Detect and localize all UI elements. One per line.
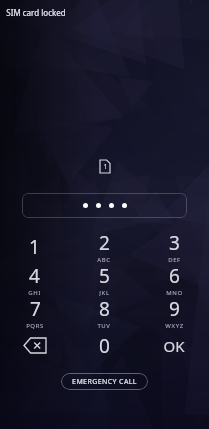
button[interactable]: 7	[0, 296, 69, 329]
staticText: OK	[163, 336, 185, 356]
button[interactable]: OK	[139, 329, 209, 362]
staticText: SIM card locked	[6, 7, 66, 18]
staticText: 6	[169, 263, 180, 289]
button[interactable]: 9	[139, 296, 209, 329]
staticText: 5	[99, 263, 110, 289]
staticText: EMERGENCY CALL	[72, 377, 137, 387]
button[interactable]: 5	[69, 263, 139, 296]
staticText: MNO	[166, 289, 183, 296]
staticText: 0	[99, 333, 110, 359]
staticText: ABC	[97, 256, 111, 263]
staticText: JKL	[99, 289, 110, 296]
staticText: 1	[29, 234, 40, 260]
button[interactable]: EMERGENCY CALL	[61, 373, 148, 390]
staticText: 8	[99, 296, 110, 322]
button[interactable]: 2	[69, 230, 139, 263]
staticText: 2	[99, 230, 110, 256]
button[interactable]: 3	[139, 230, 209, 263]
staticText: 7	[30, 296, 41, 322]
staticText: TUV	[97, 322, 111, 329]
button[interactable]: 8	[69, 296, 139, 329]
staticText: DEF	[168, 256, 181, 263]
button[interactable]: 4	[0, 263, 69, 296]
staticText: GHI	[28, 289, 41, 296]
button[interactable]: 0	[69, 329, 139, 362]
button[interactable]	[22, 193, 187, 218]
button[interactable]: 1	[0, 230, 69, 263]
staticText: 9	[169, 296, 180, 322]
staticText: 3	[169, 230, 180, 256]
staticText: PQRS	[26, 322, 44, 329]
staticText: 1	[103, 162, 108, 172]
staticText: 4	[29, 263, 40, 289]
button[interactable]: 6	[139, 263, 209, 296]
button[interactable]: Backspace	[0, 329, 69, 362]
staticText: WXYZ	[165, 322, 184, 329]
